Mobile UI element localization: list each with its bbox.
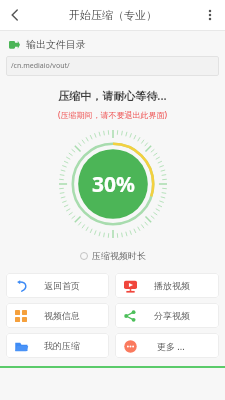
staticText: 我的压缩	[44, 340, 80, 351]
staticText: 分享视频	[154, 310, 190, 321]
staticText: 30%	[92, 170, 135, 199]
staticText: 输出文件目录	[26, 38, 86, 51]
button[interactable]: Back	[0, 0, 30, 30]
staticText: /cn.mediaio/vout/VID_20200818_074900_115…	[11, 61, 214, 71]
button[interactable]: Share video	[115, 303, 219, 328]
staticText: (压缩期间，请不要退出此界面)	[58, 109, 167, 120]
staticText: 视频信息	[44, 310, 80, 321]
staticText: 开始压缩（专业）	[69, 8, 157, 22]
button[interactable]: Go home	[6, 273, 109, 298]
staticText: 压缩视频时长	[92, 250, 146, 261]
button[interactable]: Video info	[6, 303, 109, 328]
staticText: 播放视频	[154, 280, 190, 291]
staticText: 更多 ...	[157, 340, 185, 352]
staticText: 返回首页	[44, 280, 80, 291]
button[interactable]: /cn.mediaio/vout/VID_20200818_074900_115…	[6, 56, 219, 76]
button[interactable]: My compressions	[6, 333, 109, 358]
button[interactable]: More options	[195, 0, 225, 30]
staticText: 压缩中，请耐心等待...	[58, 88, 167, 103]
button[interactable]: Play video	[115, 273, 219, 298]
button[interactable]: More	[115, 333, 219, 358]
button[interactable]: 压缩视频时长	[76, 248, 150, 263]
